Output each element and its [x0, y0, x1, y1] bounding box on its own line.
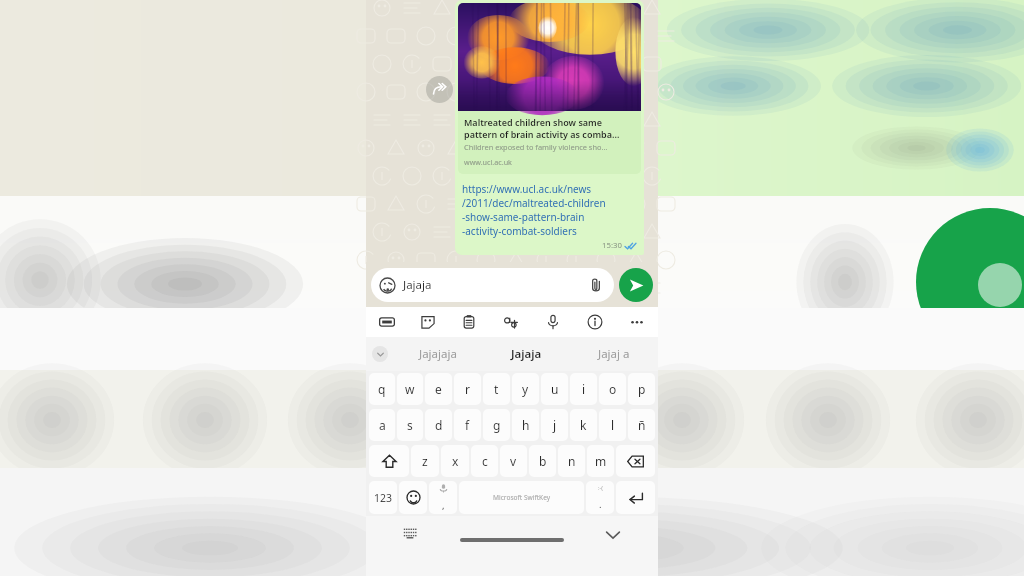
button[interactable]: Forwarded — [426, 76, 453, 103]
button[interactable]: l — [599, 409, 626, 441]
staticText: r — [465, 381, 470, 397]
button[interactable]: 123 — [369, 481, 397, 514]
button[interactable]: i — [570, 373, 597, 405]
staticText: e — [435, 381, 442, 397]
button[interactable]: Translate — [490, 307, 532, 337]
staticText: u — [551, 381, 559, 397]
button[interactable]: p — [628, 373, 655, 405]
button[interactable]: v — [500, 445, 527, 477]
button[interactable]: :-( — [586, 481, 614, 514]
button[interactable]: Jajaja — [371, 268, 614, 302]
button[interactable]: Jajaja — [482, 337, 570, 371]
staticText: m — [595, 453, 607, 469]
button[interactable]: Hide keyboard — [602, 524, 624, 546]
button[interactable]: More — [616, 307, 658, 337]
staticText: ñ — [638, 417, 646, 433]
staticText: -activity-combat-soldiers — [462, 224, 577, 238]
staticText: s — [407, 417, 413, 433]
button[interactable]: t — [483, 373, 510, 405]
button[interactable]: GIF — [366, 307, 407, 337]
button[interactable]: Attach — [586, 275, 606, 295]
button[interactable]: Shift — [369, 445, 409, 477]
staticText: a — [379, 417, 386, 433]
button[interactable]: Voice input — [532, 307, 574, 337]
button[interactable]: s — [397, 409, 423, 441]
button[interactable]: Info — [574, 307, 616, 337]
staticText: w — [405, 381, 415, 397]
button[interactable]: Jajajaja — [394, 337, 482, 371]
button[interactable]: Expand suggestions — [366, 337, 394, 371]
button[interactable]: n — [558, 445, 585, 477]
button[interactable]: Space — [459, 481, 584, 514]
button[interactable]: f — [454, 409, 481, 441]
staticText: Jajaja — [403, 277, 432, 293]
button[interactable]: Maltreated children show same — [455, 0, 644, 255]
button[interactable]: b — [529, 445, 556, 477]
button[interactable]: r — [454, 373, 481, 405]
button[interactable]: c — [471, 445, 498, 477]
button[interactable]: Stickers — [407, 307, 448, 337]
button[interactable]: m — [587, 445, 614, 477]
button[interactable]: , — [429, 481, 457, 514]
staticText: o — [609, 381, 617, 397]
staticText: x — [452, 453, 459, 469]
staticText: Jajaja — [511, 346, 542, 362]
button[interactable]: g — [483, 409, 510, 441]
staticText: -show-same-pattern-brain — [462, 210, 585, 224]
button[interactable]: u — [541, 373, 568, 405]
button[interactable]: ñ — [628, 409, 655, 441]
staticText: v — [510, 453, 517, 469]
button[interactable]: e — [425, 373, 452, 405]
staticText: k — [580, 417, 587, 433]
staticText: z — [422, 453, 428, 469]
staticText: h — [522, 417, 530, 433]
button[interactable]: Send — [619, 268, 653, 302]
button[interactable]: z — [411, 445, 439, 477]
staticText: y — [522, 381, 529, 397]
staticText: pattern of brain activity as comba… — [464, 128, 620, 140]
staticText: . — [599, 498, 602, 511]
button[interactable]: Enter — [616, 481, 655, 514]
button[interactable]: Emoji — [399, 481, 427, 514]
button[interactable]: Jajaj a — [570, 337, 658, 371]
button[interactable]: x — [441, 445, 469, 477]
staticText: g — [493, 417, 501, 433]
staticText: c — [482, 453, 488, 469]
staticText: www.ucl.ac.uk — [464, 157, 512, 167]
staticText: b — [539, 453, 547, 469]
button[interactable]: d — [425, 409, 452, 441]
button[interactable]: h — [512, 409, 539, 441]
staticText: f — [465, 417, 470, 433]
staticText: j — [553, 417, 557, 433]
button[interactable]: y — [512, 373, 539, 405]
button[interactable]: q — [369, 373, 395, 405]
button[interactable]: k — [570, 409, 597, 441]
staticText: /2011/dec/maltreated-children — [462, 196, 606, 210]
staticText: d — [435, 417, 443, 433]
button[interactable]: Clipboard — [448, 307, 490, 337]
button[interactable]: Backspace — [616, 445, 655, 477]
staticText: 15:30 — [602, 240, 622, 251]
staticText: i — [582, 381, 586, 397]
button[interactable]: a — [369, 409, 395, 441]
staticText: , — [442, 499, 445, 512]
staticText: 123 — [374, 491, 393, 505]
staticText: t — [494, 381, 499, 397]
staticText: p — [638, 381, 646, 397]
staticText: l — [611, 417, 615, 433]
button[interactable]: o — [599, 373, 626, 405]
staticText: https://www.ucl.ac.uk/news — [462, 182, 592, 196]
staticText: :-( — [598, 484, 603, 492]
staticText: Children exposed to family violence sho… — [464, 142, 608, 152]
staticText: Jajajaja — [419, 346, 457, 362]
button[interactable]: j — [541, 409, 568, 441]
staticText: Microsoft SwiftKey — [493, 493, 551, 502]
staticText: n — [568, 453, 576, 469]
staticText: Maltreated children show same — [464, 116, 603, 128]
staticText: Jajaj a — [598, 346, 630, 362]
staticText: q — [378, 381, 386, 397]
button[interactable]: w — [397, 373, 423, 405]
button[interactable]: Switch keyboard — [400, 524, 420, 544]
